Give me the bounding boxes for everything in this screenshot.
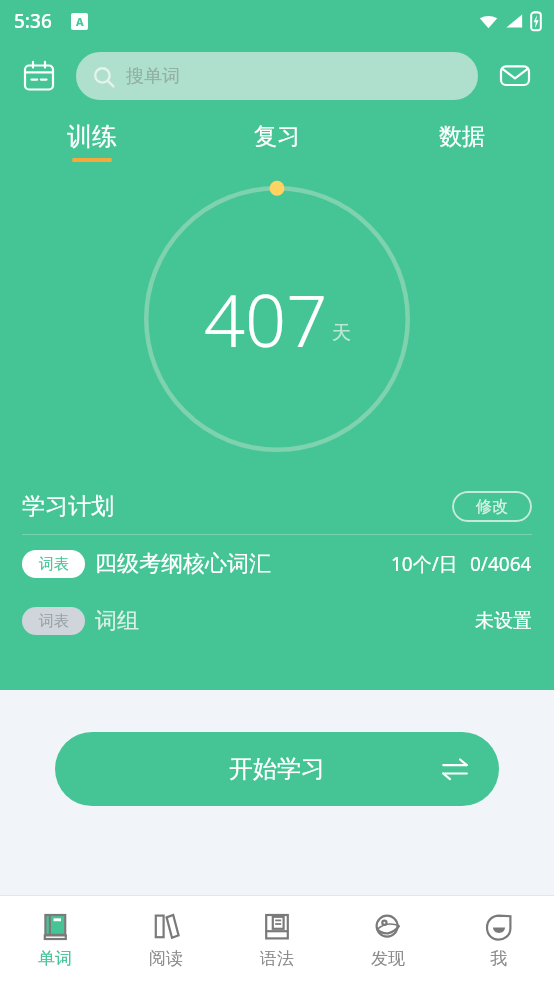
staticText: 单词 xyxy=(38,948,72,969)
staticText: 词表 xyxy=(39,555,69,574)
staticText: 天 xyxy=(332,321,351,345)
button[interactable]: 单词 xyxy=(0,896,110,984)
staticText: 搜单词 xyxy=(126,65,180,88)
staticText: 阅读 xyxy=(149,948,183,969)
staticText: 发现 xyxy=(371,948,405,969)
staticText: 未设置 xyxy=(475,609,532,633)
button[interactable]: Messages xyxy=(492,53,538,99)
button[interactable]: 训练 xyxy=(0,110,184,172)
staticText: 词组 xyxy=(95,607,139,635)
button[interactable]: 搜单词 xyxy=(76,52,478,100)
staticText: 10个/日 xyxy=(391,551,458,577)
button[interactable]: 修改 xyxy=(452,491,532,522)
button[interactable]: 数据 xyxy=(369,110,554,172)
button[interactable]: 词表 xyxy=(22,593,532,648)
button[interactable]: Calendar xyxy=(16,53,62,99)
button[interactable]: 发现 xyxy=(332,896,443,984)
staticText: 训练 xyxy=(67,121,117,152)
button[interactable]: 词表 xyxy=(22,535,532,593)
staticText: 复习 xyxy=(254,122,300,151)
button[interactable]: 阅读 xyxy=(110,896,221,984)
button[interactable]: 开始学习 xyxy=(55,732,499,806)
staticText: 语法 xyxy=(260,948,294,969)
staticText: 开始学习 xyxy=(229,754,325,784)
staticText: 407 xyxy=(204,270,328,368)
staticText: 0/4064 xyxy=(470,551,532,577)
staticText: 数据 xyxy=(439,122,485,151)
staticText: 我 xyxy=(490,948,507,969)
staticText: 四级考纲核心词汇 xyxy=(95,550,271,578)
button[interactable]: 我 xyxy=(443,896,554,984)
staticText: 学习计划 xyxy=(22,492,114,521)
staticText: 词表 xyxy=(39,612,69,631)
staticText: A xyxy=(76,14,84,29)
staticText: 修改 xyxy=(476,497,508,517)
button[interactable]: 复习 xyxy=(184,110,369,172)
button[interactable]: 语法 xyxy=(221,896,332,984)
staticText: 5:36 xyxy=(14,8,52,34)
